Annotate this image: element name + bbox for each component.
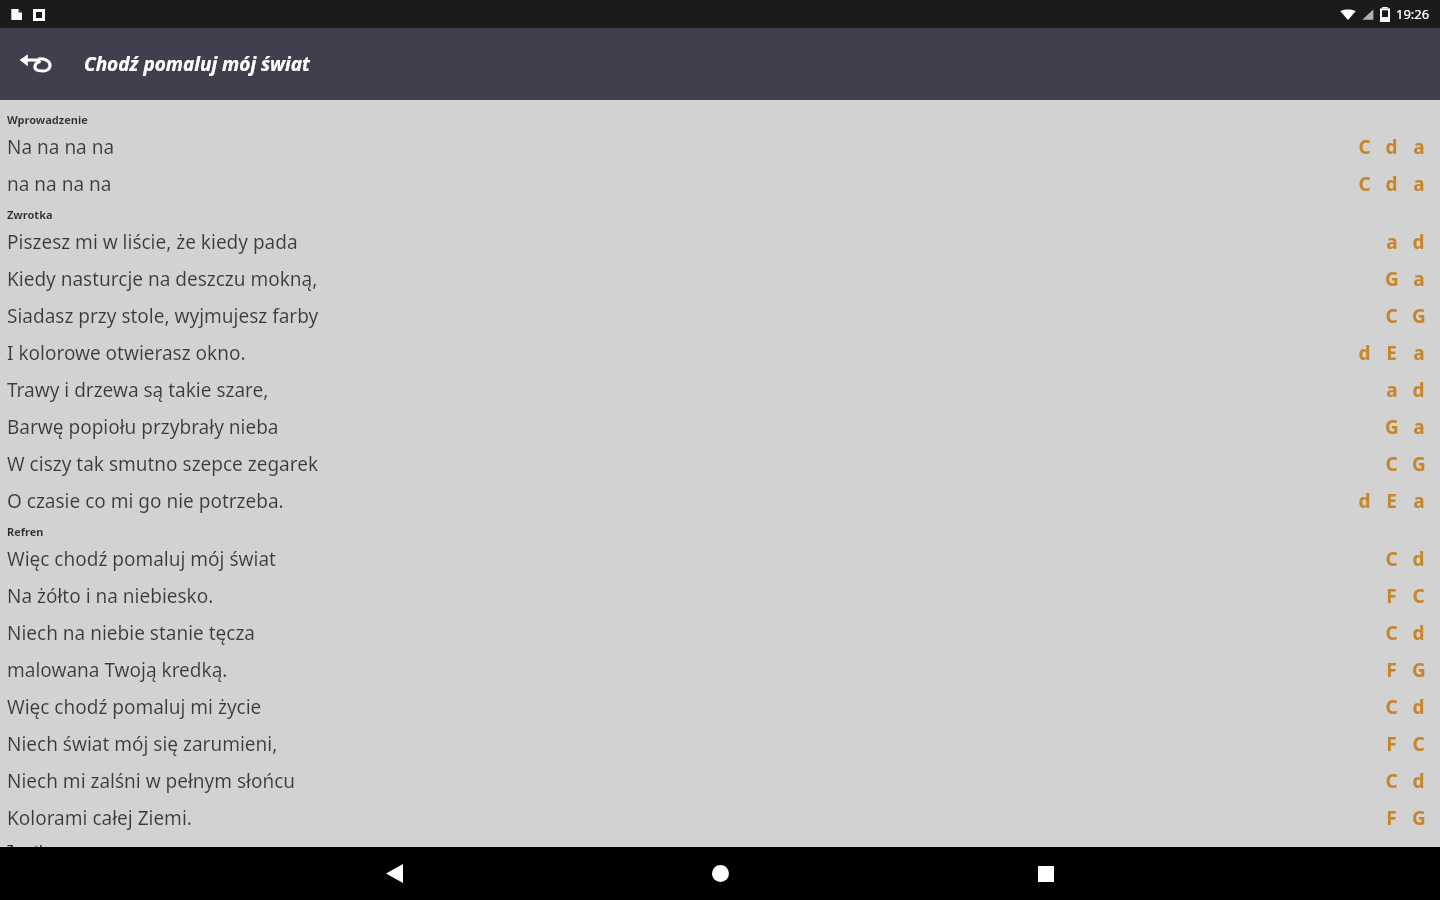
button[interactable]: na na na na — [0, 165, 1440, 202]
button[interactable]: Back — [367, 847, 421, 900]
staticText: a — [1413, 414, 1425, 440]
button[interactable]: Kiedy nasturcje na deszczu mokną, — [0, 260, 1440, 297]
button[interactable]: Niech na niebie stanie tęcza — [0, 614, 1440, 651]
staticText: a — [1386, 229, 1398, 255]
staticText: d — [1358, 488, 1371, 514]
staticText: na na na na — [7, 171, 1351, 197]
button[interactable]: Więc chodź pomaluj mi życie — [0, 688, 1440, 725]
staticText: E — [1386, 340, 1397, 366]
button[interactable]: malowana Twoją kredką. — [0, 651, 1440, 688]
staticText: Niech mi zalśni w pełnym słońcu — [7, 768, 1378, 794]
staticText: C — [1412, 731, 1425, 757]
staticText: G — [1412, 451, 1426, 477]
button[interactable]: Na na na na — [0, 128, 1440, 165]
staticText: d — [1412, 229, 1425, 255]
staticText: Kiedy nasturcje na deszczu mokną, — [7, 266, 1378, 292]
staticText: a — [1413, 488, 1425, 514]
staticText: Zwrotka — [7, 841, 53, 847]
staticText: W ciszy tak smutno szepce zegarek — [7, 451, 1378, 477]
staticText: C — [1385, 546, 1398, 572]
staticText: a — [1413, 266, 1425, 292]
button[interactable]: Więc chodź pomaluj mój świat — [0, 540, 1440, 577]
button[interactable]: Home — [693, 847, 747, 900]
staticText: C — [1358, 134, 1371, 160]
staticText: d — [1385, 134, 1398, 160]
staticText: C — [1412, 583, 1425, 609]
staticText: d — [1412, 694, 1425, 720]
staticText: C — [1385, 303, 1398, 329]
staticText: a — [1413, 134, 1425, 160]
button[interactable]: Kolorami całej Ziemi. — [0, 799, 1440, 836]
button[interactable]: Niech świat mój się zarumieni, — [0, 725, 1440, 762]
staticText: C — [1385, 768, 1398, 794]
staticText: Więc chodź pomaluj mi życie — [7, 694, 1378, 720]
staticText: I kolorowe otwierasz okno. — [7, 340, 1351, 366]
staticText: Barwę popiołu przybrały nieba — [7, 414, 1378, 440]
staticText: O czasie co mi go nie potrzeba. — [7, 488, 1351, 514]
staticText: G — [1412, 805, 1426, 831]
staticText: a — [1413, 340, 1425, 366]
staticText: malowana Twoją kredką. — [7, 657, 1378, 683]
button[interactable]: Piszesz mi w liście, że kiedy pada — [0, 223, 1440, 260]
staticText: C — [1358, 171, 1371, 197]
staticText: d — [1358, 340, 1371, 366]
button[interactable]: Trawy i drzewa są takie szare, — [0, 371, 1440, 408]
staticText: F — [1386, 731, 1397, 757]
staticText: a — [1386, 377, 1398, 403]
staticText: G — [1385, 266, 1399, 292]
staticText: Niech na niebie stanie tęcza — [7, 620, 1378, 646]
button[interactable]: Barwę popiołu przybrały nieba — [0, 408, 1440, 445]
button[interactable]: Recent apps — [1019, 847, 1073, 900]
staticText: Refren — [7, 524, 44, 539]
staticText: Na żółto i na niebiesko. — [7, 583, 1378, 609]
staticText: d — [1385, 171, 1398, 197]
staticText: G — [1385, 414, 1399, 440]
staticText: d — [1412, 377, 1425, 403]
staticText: C — [1385, 451, 1398, 477]
staticText: F — [1386, 583, 1397, 609]
staticText: F — [1386, 805, 1397, 831]
staticText: G — [1412, 303, 1426, 329]
staticText: Chodź pomaluj mój świat — [84, 51, 310, 77]
staticText: F — [1386, 657, 1397, 683]
staticText: Zwrotka — [7, 207, 53, 222]
staticText: C — [1385, 620, 1398, 646]
staticText: 19:26 — [1396, 5, 1430, 23]
staticText: E — [1386, 488, 1397, 514]
staticText: Wprowadzenie — [7, 112, 88, 127]
button[interactable]: O czasie co mi go nie potrzeba. — [0, 482, 1440, 519]
staticText: a — [1413, 171, 1425, 197]
staticText: C — [1385, 694, 1398, 720]
staticText: Kolorami całej Ziemi. — [7, 805, 1378, 831]
staticText: Na na na na — [7, 134, 1351, 160]
button[interactable]: Na żółto i na niebiesko. — [0, 577, 1440, 614]
staticText: d — [1412, 768, 1425, 794]
staticText: G — [1412, 657, 1426, 683]
staticText: Więc chodź pomaluj mój świat — [7, 546, 1378, 572]
staticText: Piszesz mi w liście, że kiedy pada — [7, 229, 1378, 255]
button[interactable]: W ciszy tak smutno szepce zegarek — [0, 445, 1440, 482]
staticText: d — [1412, 546, 1425, 572]
staticText: Trawy i drzewa są takie szare, — [7, 377, 1378, 403]
button[interactable]: Back — [8, 36, 64, 92]
button[interactable]: Siadasz przy stole, wyjmujesz farby — [0, 297, 1440, 334]
staticText: Siadasz przy stole, wyjmujesz farby — [7, 303, 1378, 329]
button[interactable]: I kolorowe otwierasz okno. — [0, 334, 1440, 371]
staticText: d — [1412, 620, 1425, 646]
staticText: Niech świat mój się zarumieni, — [7, 731, 1378, 757]
button[interactable]: Niech mi zalśni w pełnym słońcu — [0, 762, 1440, 799]
